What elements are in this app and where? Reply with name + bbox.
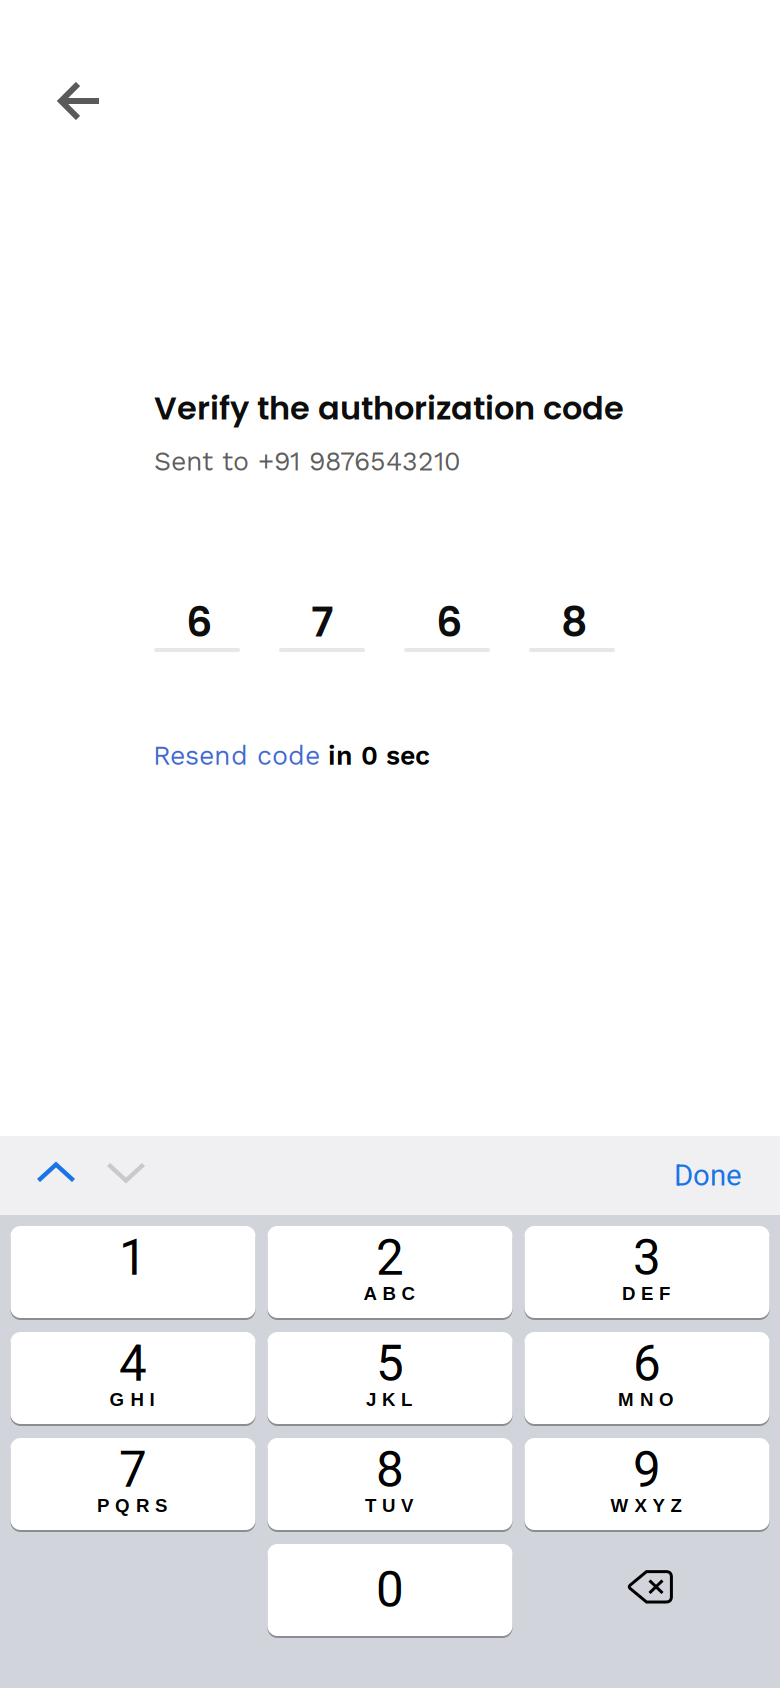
staticText: MNO [618,1389,674,1410]
staticText: Sent to +91 9876543210 [154,446,461,477]
staticText: 6 [633,1335,661,1393]
button[interactable]: Back [40,61,120,141]
button[interactable]: 3 [524,1226,769,1318]
staticText: 2 [376,1229,404,1287]
staticText: 6 [186,593,212,651]
staticText: 3 [633,1229,661,1287]
staticText: Done [674,1158,742,1193]
staticText: Verify the authorization code [154,386,624,431]
button[interactable]: 0 [267,1544,512,1636]
button[interactable]: 1 [10,1226,255,1318]
button[interactable]: Previous field [18,1136,94,1215]
staticText: 7 [311,593,334,651]
staticText: 9 [633,1441,661,1499]
button[interactable]: 6 [524,1332,769,1424]
staticText: 5 [376,1335,404,1393]
staticText: 1 [119,1229,147,1287]
staticText: DEF [622,1283,670,1304]
button[interactable]: 7 [10,1438,255,1530]
staticText: in 0 sec [320,740,430,771]
button[interactable]: Resend code [153,740,320,771]
button[interactable]: 4 [10,1332,255,1424]
button[interactable]: Done [674,1136,780,1215]
staticText: 8 [561,593,588,651]
staticText: JKL [366,1389,412,1410]
staticText: PQRS [97,1495,167,1516]
staticText: WXYZ [610,1495,681,1516]
button[interactable]: 9 [524,1438,769,1530]
button[interactable]: 8 [267,1438,512,1530]
button[interactable]: Delete [524,1544,769,1636]
staticText: TUV [365,1495,413,1516]
staticText: GHI [109,1389,154,1410]
staticText: Resend code [153,740,320,771]
staticText: 6 [436,593,462,651]
staticText: 8 [376,1441,404,1499]
button[interactable]: Next field [94,1136,170,1215]
staticText: 7 [119,1441,147,1499]
staticText: 0 [376,1561,404,1619]
button[interactable]: 5 [267,1332,512,1424]
staticText: ABC [363,1283,414,1304]
staticText: 4 [119,1335,147,1393]
button[interactable]: 2 [267,1226,512,1318]
